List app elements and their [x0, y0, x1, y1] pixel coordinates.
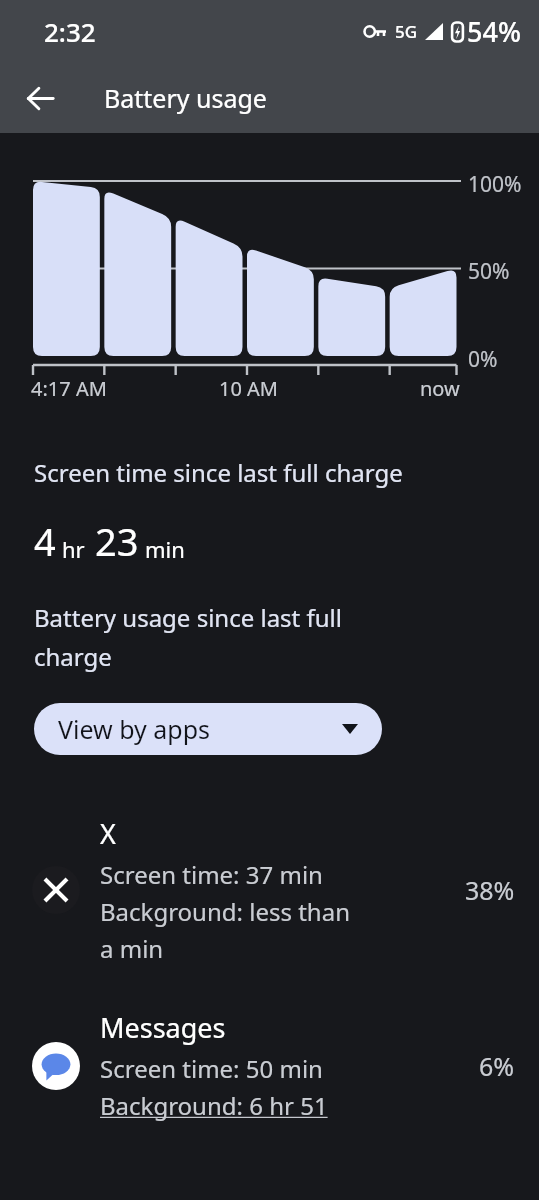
- staticText: 2:32: [44, 14, 96, 49]
- staticText: 38%: [465, 873, 515, 907]
- staticText: 23: [95, 515, 139, 567]
- staticText: Screen time: 50 min: [100, 1052, 323, 1085]
- staticText: a min: [100, 932, 164, 965]
- button[interactable]: X: [0, 811, 539, 969]
- staticText: 10 AM: [219, 375, 278, 402]
- staticText: 50%: [468, 257, 510, 286]
- staticText: Screen time since last full charge: [34, 456, 403, 489]
- staticText: X: [100, 815, 116, 852]
- staticText: Background: 6 hr 51: [100, 1089, 328, 1122]
- staticText: Background: less than: [100, 895, 350, 928]
- staticText: 100%: [468, 170, 522, 199]
- staticText: 4: [34, 515, 56, 567]
- button[interactable]: Messages: [0, 1005, 539, 1126]
- staticText: 6%: [479, 1049, 515, 1083]
- staticText: Messages: [100, 1009, 226, 1046]
- staticText: hr: [62, 534, 85, 564]
- staticText: Battery usage: [104, 81, 267, 115]
- staticText: 4:17 AM: [31, 375, 107, 402]
- staticText: Screen time: 37 min: [100, 858, 323, 891]
- button[interactable]: Back: [14, 72, 66, 124]
- staticText: min: [145, 534, 185, 564]
- staticText: 5G: [395, 20, 418, 43]
- staticText: now: [420, 375, 460, 402]
- staticText: charge: [34, 640, 112, 673]
- staticText: 0%: [468, 345, 498, 374]
- button[interactable]: View by apps: [34, 703, 382, 755]
- staticText: View by apps: [58, 712, 211, 746]
- staticText: Battery usage since last full: [34, 601, 342, 634]
- staticText: 54%: [467, 13, 521, 50]
